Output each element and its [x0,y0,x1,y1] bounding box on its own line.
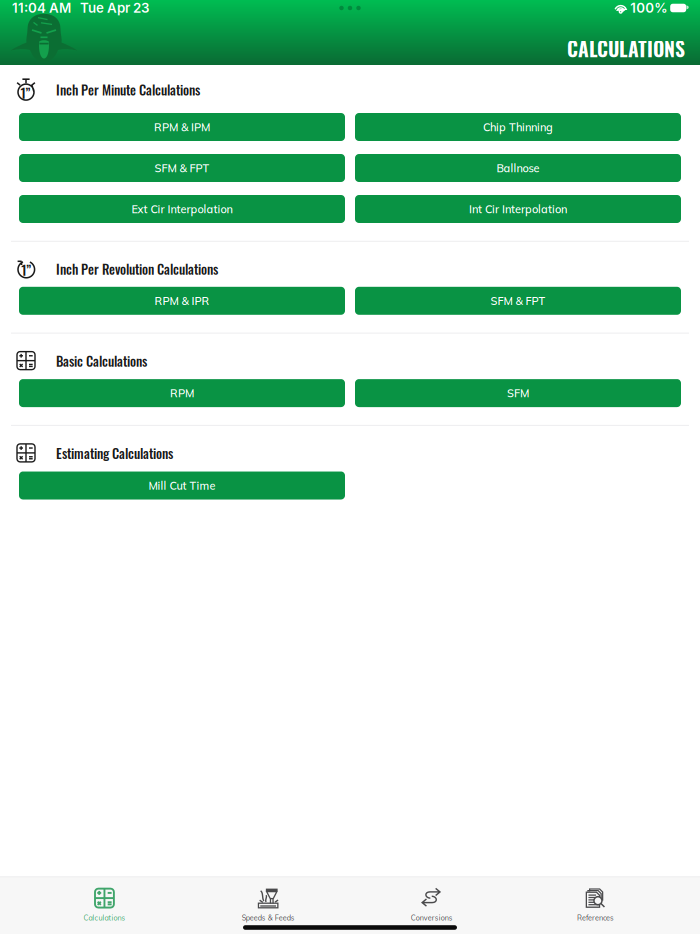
button[interactable]: SFM & FPT [355,287,681,315]
staticText: Basic Calculations [56,351,147,370]
button[interactable]: Ballnose [355,154,681,182]
staticText: 100% [630,0,667,16]
staticText: 1” [21,259,31,280]
staticText: RPM & IPM [154,120,210,134]
button[interactable]: Conversions [350,888,514,924]
button[interactable]: Int Cir Interpolation [355,195,681,223]
button[interactable]: RPM & IPR [19,287,345,315]
staticText: Ballnose [496,161,539,175]
staticText: SFM [507,386,529,400]
staticText: Inch Per Minute Calculations [56,80,200,99]
staticText: Int Cir Interpolation [469,202,567,216]
button[interactable]: SFM [355,379,681,407]
staticText: Speeds & Feeds [242,913,295,922]
staticText: 11:04 AM [12,0,71,16]
button[interactable]: Calculations [23,888,186,924]
staticText: CALCULATIONS [567,34,685,63]
staticText: RPM & IPR [154,294,209,308]
staticText: Conversions [411,913,453,922]
staticText: SFM & FPT [490,294,545,308]
button[interactable]: Speeds & Feeds [186,888,350,924]
staticText: Mill Cut Time [148,479,215,492]
staticText: Chip Thinning [483,120,553,134]
staticText: 1” [21,82,31,103]
staticText: Estimating Calculations [56,443,173,463]
staticText: SFM & FPT [154,161,209,175]
button[interactable]: RPM [19,379,345,407]
button[interactable]: SFM & FPT [19,154,345,182]
staticText: RPM [170,386,194,400]
button[interactable]: References [514,888,677,924]
button[interactable]: Mill Cut Time [19,471,345,499]
button[interactable]: RPM & IPM [19,113,345,141]
staticText: References [577,913,614,922]
staticText: Ext Cir Interpolation [131,202,232,216]
staticText: Tue Apr 23 [71,0,149,16]
button[interactable]: Ext Cir Interpolation [19,195,345,223]
staticText: Calculations [83,913,125,922]
button[interactable]: Chip Thinning [355,113,681,141]
staticText: Inch Per Revolution Calculations [56,259,218,279]
